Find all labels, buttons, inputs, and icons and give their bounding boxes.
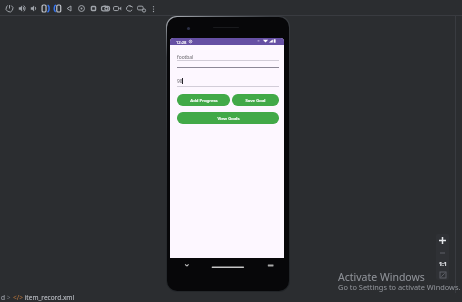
- staticText: Go to Settings to activate Windows.: [338, 282, 461, 292]
- staticText: 98: [177, 78, 183, 85]
- staticText: </>: [13, 293, 23, 302]
- staticText: >: [5, 293, 13, 302]
- button[interactable]: Zoom in: [436, 234, 449, 247]
- button[interactable]: More options: [147, 0, 159, 16]
- button[interactable]: Back: [63, 0, 75, 16]
- button[interactable]: Add Progress: [177, 94, 230, 106]
- button[interactable]: Reset: [123, 0, 135, 16]
- staticText: footbal: [177, 54, 194, 61]
- staticText: Add Progress: [190, 97, 218, 103]
- button[interactable]: Record screen: [111, 0, 123, 16]
- button[interactable]: View Goals: [177, 112, 279, 124]
- button[interactable]: Fit to screen: [436, 269, 449, 280]
- staticText: 12:28: [176, 40, 187, 46]
- staticText: Activate Windows: [338, 270, 425, 284]
- button[interactable]: Power: [3, 0, 15, 16]
- button[interactable]: More tools: [135, 0, 147, 16]
- button[interactable]: Actual size: [436, 258, 449, 269]
- staticText: d: [1, 293, 5, 302]
- button[interactable]: Rotate right: [51, 0, 63, 16]
- button[interactable]: Zoom out: [436, 247, 449, 258]
- button[interactable]: Home: [75, 0, 87, 16]
- button[interactable]: Rotate left: [39, 0, 51, 16]
- staticText: item_record.xml: [23, 293, 75, 302]
- staticText: Save Goal: [245, 97, 266, 103]
- staticText: 1:1: [439, 260, 447, 267]
- button[interactable]: Volume up: [15, 0, 27, 16]
- button[interactable]: Save Goal: [232, 94, 279, 106]
- staticText: View Goals: [217, 115, 240, 121]
- button[interactable]: Volume down: [27, 0, 39, 16]
- button[interactable]: Overview: [87, 0, 99, 16]
- button[interactable]: Screenshot: [99, 0, 111, 16]
